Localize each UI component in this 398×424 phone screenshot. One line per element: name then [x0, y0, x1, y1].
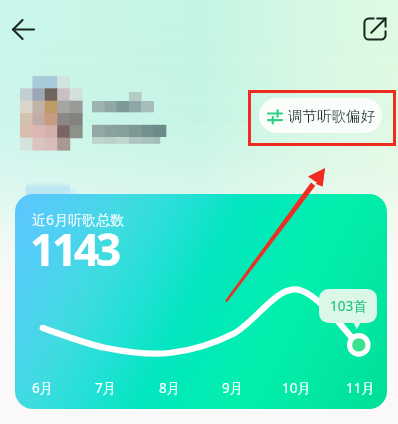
button[interactable]: Back [1, 7, 45, 51]
staticText: 近6月听歌总数 [32, 210, 125, 229]
staticText: 1143 [30, 219, 118, 279]
staticText: 调节听歌偏好 [288, 107, 375, 125]
staticText: 7月 [95, 379, 117, 397]
button[interactable]: Share [353, 7, 397, 51]
staticText: 8月 [159, 379, 181, 397]
button[interactable]: 近6月听歌总数 [15, 194, 387, 409]
button[interactable]: 调节听歌偏好 [259, 98, 382, 133]
staticText: 103首 [330, 297, 367, 315]
staticText: 6月 [32, 379, 54, 397]
staticText: 11月 [346, 379, 375, 397]
staticText: 9月 [222, 379, 244, 397]
staticText: 10月 [282, 379, 311, 397]
